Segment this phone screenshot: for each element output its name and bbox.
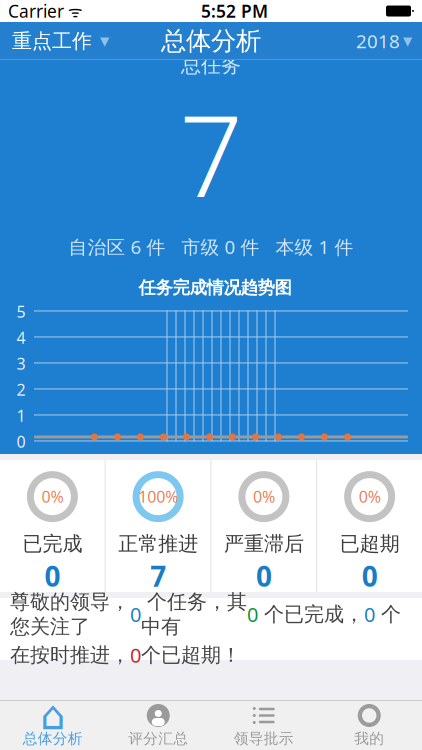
staticText: ▼ bbox=[403, 34, 412, 48]
staticText: 3 bbox=[16, 353, 25, 374]
staticText: 5:52 PM bbox=[201, 0, 268, 22]
staticText: 2月 bbox=[69, 453, 92, 473]
staticText: 100% bbox=[138, 486, 178, 507]
staticText: 个任务，其中有 bbox=[141, 590, 247, 639]
staticText: 本级 1 件 bbox=[275, 234, 353, 259]
button[interactable]: 评分汇总 bbox=[105, 700, 211, 750]
staticText: 在按时推进， bbox=[10, 643, 130, 667]
staticText: 5 bbox=[16, 301, 25, 322]
button[interactable]: 100% bbox=[106, 460, 211, 592]
staticText: 0 bbox=[44, 557, 60, 594]
staticText: 0 bbox=[362, 557, 378, 594]
staticText: 7月 bbox=[225, 453, 248, 473]
staticText: 任务完成情况趋势图 bbox=[138, 277, 291, 298]
staticText: 尊敬的领导，您关注了 bbox=[10, 590, 130, 639]
staticText: 6月 bbox=[194, 453, 217, 473]
button[interactable]: 0% bbox=[0, 460, 105, 592]
staticText: Carrier bbox=[8, 0, 64, 22]
staticText: 总体分析 bbox=[23, 729, 83, 747]
staticText: 评分汇总 bbox=[128, 729, 188, 747]
staticText: 7 bbox=[150, 557, 166, 594]
staticText: 0 bbox=[256, 557, 272, 594]
staticText: 0 bbox=[16, 431, 25, 452]
staticText: 个 bbox=[375, 602, 401, 626]
staticText: 3月 bbox=[100, 453, 123, 473]
staticText: 7 bbox=[179, 80, 243, 228]
staticText: 11月 bbox=[346, 453, 377, 473]
staticText: 0 bbox=[130, 601, 141, 627]
staticText: 1月 bbox=[38, 453, 61, 473]
staticText: 0% bbox=[253, 486, 275, 507]
staticText: 0% bbox=[41, 486, 63, 507]
staticText: ⌂ bbox=[40, 693, 65, 738]
staticText: 总体分析 bbox=[161, 25, 261, 56]
button[interactable]: 领导批示 bbox=[211, 700, 316, 750]
staticText: 自治区 6 件 bbox=[68, 234, 165, 259]
button[interactable]: 我的 bbox=[316, 700, 422, 750]
staticText: ▼ bbox=[100, 34, 109, 48]
staticText: 2018 bbox=[356, 29, 400, 53]
staticText: 正常推进 bbox=[118, 532, 198, 556]
button[interactable]: 0% bbox=[211, 460, 316, 592]
button[interactable]: ⌂ bbox=[0, 700, 105, 750]
staticText: 0 bbox=[364, 601, 375, 627]
button[interactable]: 2018 bbox=[346, 22, 422, 60]
staticText: 总任务 bbox=[181, 53, 241, 78]
staticText: 个已超期！ bbox=[141, 643, 241, 667]
staticText: 0 bbox=[247, 601, 258, 627]
staticText: 4 bbox=[16, 327, 25, 348]
staticText: 领导批示 bbox=[234, 729, 294, 747]
staticText: 4月 bbox=[132, 453, 155, 473]
staticText: 12月 bbox=[377, 453, 408, 473]
staticText: 重点工作 bbox=[12, 29, 92, 53]
staticText: 2 bbox=[16, 379, 25, 400]
staticText: ᯤ bbox=[64, 0, 83, 22]
button[interactable]: 0% bbox=[317, 460, 422, 592]
staticText: 已超期 bbox=[340, 532, 400, 556]
staticText: 个已完成， bbox=[258, 602, 364, 626]
staticText: 已完成 bbox=[22, 532, 82, 556]
staticText: 8月 bbox=[256, 453, 279, 473]
staticText: 1 bbox=[16, 405, 25, 426]
button[interactable]: 重点工作 bbox=[0, 22, 121, 60]
staticText: 10月 bbox=[315, 453, 346, 473]
staticText: 5月 bbox=[163, 453, 186, 473]
staticText: 市级 0 件 bbox=[181, 234, 259, 259]
staticText: 0% bbox=[359, 486, 381, 507]
staticText: 严重滞后 bbox=[224, 532, 304, 556]
staticText: 0 bbox=[130, 642, 141, 668]
staticText: 9月 bbox=[287, 453, 310, 473]
staticText: 我的 bbox=[354, 729, 384, 747]
